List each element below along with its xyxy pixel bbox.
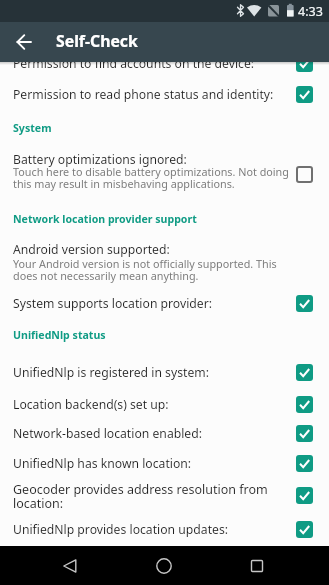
staticText: System [13,121,52,135]
button[interactable]: Battery optimizations ignored: [0,146,329,198]
staticText: UnifiedNlp status [13,328,106,342]
button[interactable]: Permission to read phone status and iden… [0,79,329,109]
staticText: Geocoder provides address resolution fro… [13,481,268,511]
button[interactable]: UnifiedNlp is registered in system: [0,357,329,387]
button[interactable] [143,546,184,585]
staticText: Touch here to disable battery optimizati… [13,164,289,191]
staticText: UnifiedNlp provides location updates: [13,521,229,538]
staticText: 4:33 [298,3,323,20]
button[interactable]: Permission to find accounts on the devic… [0,62,329,78]
staticText: System supports location provider: [13,295,212,312]
button[interactable]: Network-based location enabled: [0,418,329,448]
button[interactable]: Android version supported: [0,234,329,288]
button[interactable]: System supports location provider: [0,288,329,318]
button[interactable]: UnifiedNlp provides location updates: [0,514,329,544]
button[interactable] [4,22,44,62]
staticText: Your Android version is not officially s… [13,256,277,283]
staticText: Location backend(s) set up: [13,396,169,413]
staticText: Self-Check [56,30,138,52]
staticText: UnifiedNlp has known location: [13,455,192,472]
button[interactable] [49,546,90,585]
button[interactable]: Location backend(s) set up: [0,389,329,419]
staticText: Battery optimizations ignored: [13,151,187,168]
button[interactable]: Geocoder provides address resolution fro… [0,474,329,516]
staticText: Android version supported: [13,241,170,258]
button[interactable]: UnifiedNlp has known location: [0,448,329,478]
staticText: Network location provider support [13,212,197,226]
button[interactable] [236,546,277,585]
staticText: Permission to find accounts on the devic… [13,62,255,72]
staticText: Permission to read phone status and iden… [13,86,274,103]
staticText: Network-based location enabled: [13,425,203,442]
staticText: UnifiedNlp is registered in system: [13,364,209,381]
